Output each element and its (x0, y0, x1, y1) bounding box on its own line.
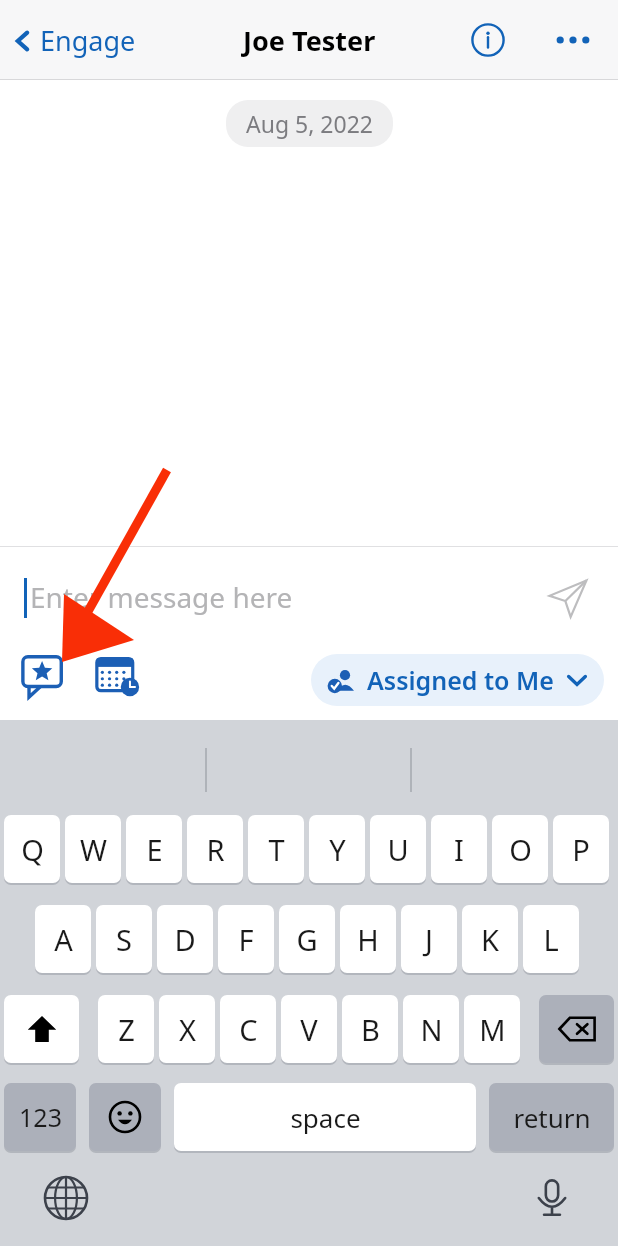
staticText: D (174, 920, 196, 959)
button[interactable]: Schedule (90, 648, 146, 704)
button[interactable]: X (159, 995, 215, 1065)
button[interactable]: M (464, 995, 520, 1065)
staticText: I (454, 830, 464, 869)
button[interactable]: Engage (10, 22, 136, 59)
button[interactable]: O (492, 815, 548, 885)
button[interactable]: I (431, 815, 487, 885)
button[interactable]: K (462, 905, 518, 975)
staticText: Z (118, 1010, 135, 1049)
button[interactable]: V (281, 995, 337, 1065)
staticText: Aug 5, 2022 (246, 108, 373, 139)
button[interactable]: Dictate (524, 1170, 580, 1226)
staticText: E (146, 830, 163, 869)
staticText: K (481, 920, 499, 959)
button[interactable]: Info (466, 18, 510, 62)
button[interactable]: 123 (4, 1083, 76, 1153)
staticText: C (239, 1010, 258, 1049)
button[interactable]: C (220, 995, 276, 1065)
staticText: N (420, 1010, 443, 1049)
button[interactable]: space (174, 1083, 476, 1153)
staticText: X (179, 1010, 196, 1049)
staticText: L (543, 920, 559, 959)
button[interactable]: W (65, 815, 121, 885)
staticText: R (206, 830, 225, 869)
staticText: 123 (19, 1100, 62, 1134)
staticText: Joe Tester (243, 22, 376, 59)
button[interactable]: T (248, 815, 304, 885)
button[interactable]: Send (540, 570, 596, 626)
staticText: Y (329, 830, 346, 869)
staticText: F (238, 920, 254, 959)
button[interactable]: Assigned to Me (311, 654, 604, 706)
staticText: Enter message here (30, 578, 293, 616)
button[interactable]: H (340, 905, 396, 975)
button[interactable]: Q (4, 815, 60, 885)
button[interactable]: Quick text (16, 648, 72, 704)
button[interactable]: A (35, 905, 91, 975)
staticText: space (290, 1100, 361, 1135)
staticText: T (268, 830, 285, 869)
staticText: M (479, 1010, 506, 1049)
staticText: Engage (40, 22, 136, 59)
staticText: B (361, 1010, 380, 1049)
button[interactable]: J (401, 905, 457, 975)
button[interactable] (89, 1083, 161, 1153)
staticText: U (387, 830, 409, 869)
staticText: S (116, 920, 132, 959)
staticText: J (425, 920, 433, 959)
staticText: H (357, 920, 379, 959)
button[interactable]: Z (98, 995, 154, 1065)
button[interactable]: B (342, 995, 398, 1065)
button[interactable]: P (553, 815, 609, 885)
button[interactable]: Change keyboard (38, 1170, 94, 1226)
button[interactable]: return (489, 1083, 614, 1153)
button[interactable] (539, 995, 614, 1065)
button[interactable]: E (126, 815, 182, 885)
staticText: Q (21, 830, 44, 869)
button[interactable]: F (218, 905, 274, 975)
button[interactable]: L (523, 905, 579, 975)
button[interactable]: More options (548, 15, 598, 65)
button[interactable]: N (403, 995, 459, 1065)
button[interactable] (4, 995, 79, 1065)
button[interactable]: Y (309, 815, 365, 885)
staticText: V (300, 1010, 318, 1049)
staticText: W (80, 830, 107, 869)
button[interactable]: S (96, 905, 152, 975)
staticText: return (513, 1100, 591, 1135)
button[interactable]: R (187, 815, 243, 885)
staticText: G (296, 920, 318, 959)
button[interactable]: U (370, 815, 426, 885)
staticText: O (509, 830, 532, 869)
button[interactable]: D (157, 905, 213, 975)
staticText: Assigned to Me (367, 663, 554, 697)
staticText: P (572, 830, 590, 869)
staticText: A (54, 920, 73, 959)
button[interactable]: G (279, 905, 335, 975)
